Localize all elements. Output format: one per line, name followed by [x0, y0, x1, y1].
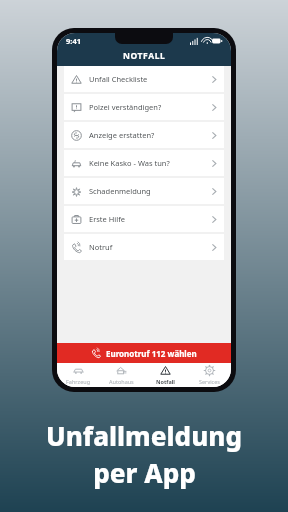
staticText: Keine Kasko - Was tun? — [89, 158, 170, 168]
staticText: Erste Hilfe — [89, 214, 125, 224]
staticText: Anzeige erstatten? — [89, 130, 155, 140]
staticText: 9:41 — [66, 36, 81, 46]
button[interactable]: Notfall — [143, 363, 187, 387]
button[interactable]: Erste Hilfe — [64, 206, 224, 232]
staticText: Notruf — [89, 242, 113, 252]
button[interactable]: Notruf — [64, 234, 224, 260]
staticText: Euronotruf 112 wählen — [106, 348, 197, 359]
staticText: Services — [199, 378, 220, 385]
button[interactable]: Anzeige erstatten? — [64, 122, 224, 148]
staticText: NOTFALL — [123, 50, 166, 62]
button[interactable]: Autohaus — [100, 363, 143, 387]
button[interactable]: Fahrzeug — [57, 363, 100, 387]
staticText: Unfall Checkliste — [89, 74, 148, 84]
button[interactable]: Services — [187, 363, 231, 387]
button[interactable]: Euronotruf 112 wählen — [57, 343, 231, 363]
staticText: Unfallmeldung — [46, 418, 242, 453]
button[interactable]: Schadenmeldung — [64, 178, 224, 204]
staticText: Schadenmeldung — [89, 186, 151, 196]
staticText: Polzei verständigen? — [89, 102, 162, 112]
staticText: Fahrzeug — [66, 378, 91, 385]
button[interactable]: Unfall Checkliste — [64, 66, 224, 92]
button[interactable]: Keine Kasko - Was tun? — [64, 150, 224, 176]
staticText: per App — [93, 455, 196, 490]
staticText: Notfall — [156, 378, 175, 385]
button[interactable]: Polzei verständigen? — [64, 94, 224, 120]
staticText: Autohaus — [109, 378, 134, 385]
